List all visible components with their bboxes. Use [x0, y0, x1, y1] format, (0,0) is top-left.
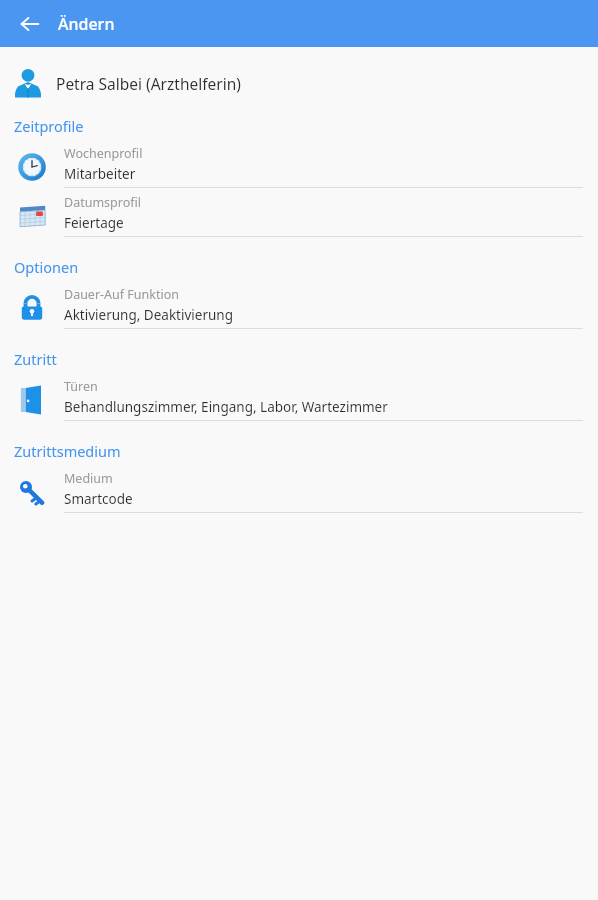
button[interactable]: Dauer-Auf Funktion [0, 283, 598, 332]
button[interactable]: Petra Salbei (Arzthelferin) [0, 63, 598, 103]
staticText: Petra Salbei (Arzthelferin) [56, 73, 241, 94]
staticText: Feiertage [64, 214, 124, 232]
staticText: Aktivierung, Deaktivierung [64, 306, 233, 324]
staticText: Zutritt [14, 349, 57, 369]
staticText: Datumsprofil [64, 194, 141, 211]
staticText: Türen [64, 378, 98, 395]
staticText: Zeitprofile [14, 116, 84, 136]
staticText: Wochenprofil [64, 145, 143, 162]
staticText: Dauer-Auf Funktion [64, 286, 180, 303]
staticText: Zutrittsmedium [14, 441, 121, 461]
button[interactable]: Wochenprofil [0, 142, 598, 191]
button[interactable]: Medium [0, 467, 598, 516]
staticText: Medium [64, 470, 113, 487]
staticText: Mitarbeiter [64, 165, 136, 183]
staticText: Optionen [14, 257, 79, 277]
staticText: Smartcode [64, 490, 133, 508]
button[interactable]: Back [12, 6, 48, 42]
staticText: Behandlungszimmer, Eingang, Labor, Warte… [64, 398, 388, 416]
button[interactable]: Türen [0, 375, 598, 424]
staticText: Ändern [58, 13, 115, 35]
button[interactable]: Datumsprofil [0, 191, 598, 240]
